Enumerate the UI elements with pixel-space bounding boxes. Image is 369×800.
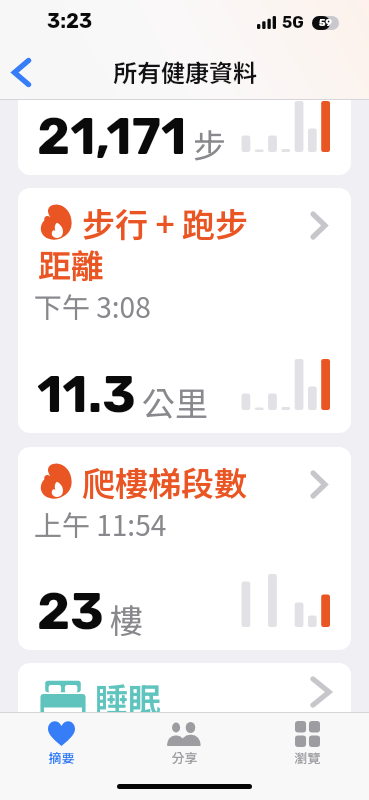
button[interactable]: 步行 + 跑步 <box>18 188 351 433</box>
staticText: 所有健康資料 <box>113 54 257 89</box>
staticText: 步 <box>193 120 226 168</box>
button[interactable]: 睡眠 <box>18 663 351 712</box>
staticText: 上午 11:54 <box>34 504 167 545</box>
button[interactable]: Open details <box>304 465 334 503</box>
staticText: 3:23 <box>47 9 93 33</box>
staticText: 59 <box>319 17 332 29</box>
staticText: 步行 + 跑步 <box>82 199 249 247</box>
staticText: 分享 <box>171 748 198 767</box>
staticText: 摘要 <box>48 748 75 767</box>
staticText: 爬樓梯段數 <box>82 458 247 506</box>
staticText: 23 <box>37 581 104 641</box>
button[interactable]: 21,171 <box>18 100 351 175</box>
staticText: 睡眠 <box>95 674 161 712</box>
button[interactable]: Open details <box>304 206 334 244</box>
button[interactable]: 分享 <box>123 718 246 767</box>
staticText: 公里 <box>142 378 208 426</box>
button[interactable]: 瀏覽 <box>246 718 369 767</box>
staticText: 距離 <box>38 240 104 288</box>
staticText: 11.3 <box>37 364 136 424</box>
staticText: 5G <box>282 13 304 32</box>
button[interactable]: 爬樓梯段數 <box>18 447 351 650</box>
staticText: 樓 <box>110 595 143 643</box>
button[interactable]: 摘要 <box>0 718 123 767</box>
staticText: 瀏覽 <box>294 748 321 767</box>
staticText: 21,171 <box>37 106 187 166</box>
staticText: 下午 3:08 <box>34 286 151 327</box>
button[interactable]: Back <box>2 50 40 94</box>
